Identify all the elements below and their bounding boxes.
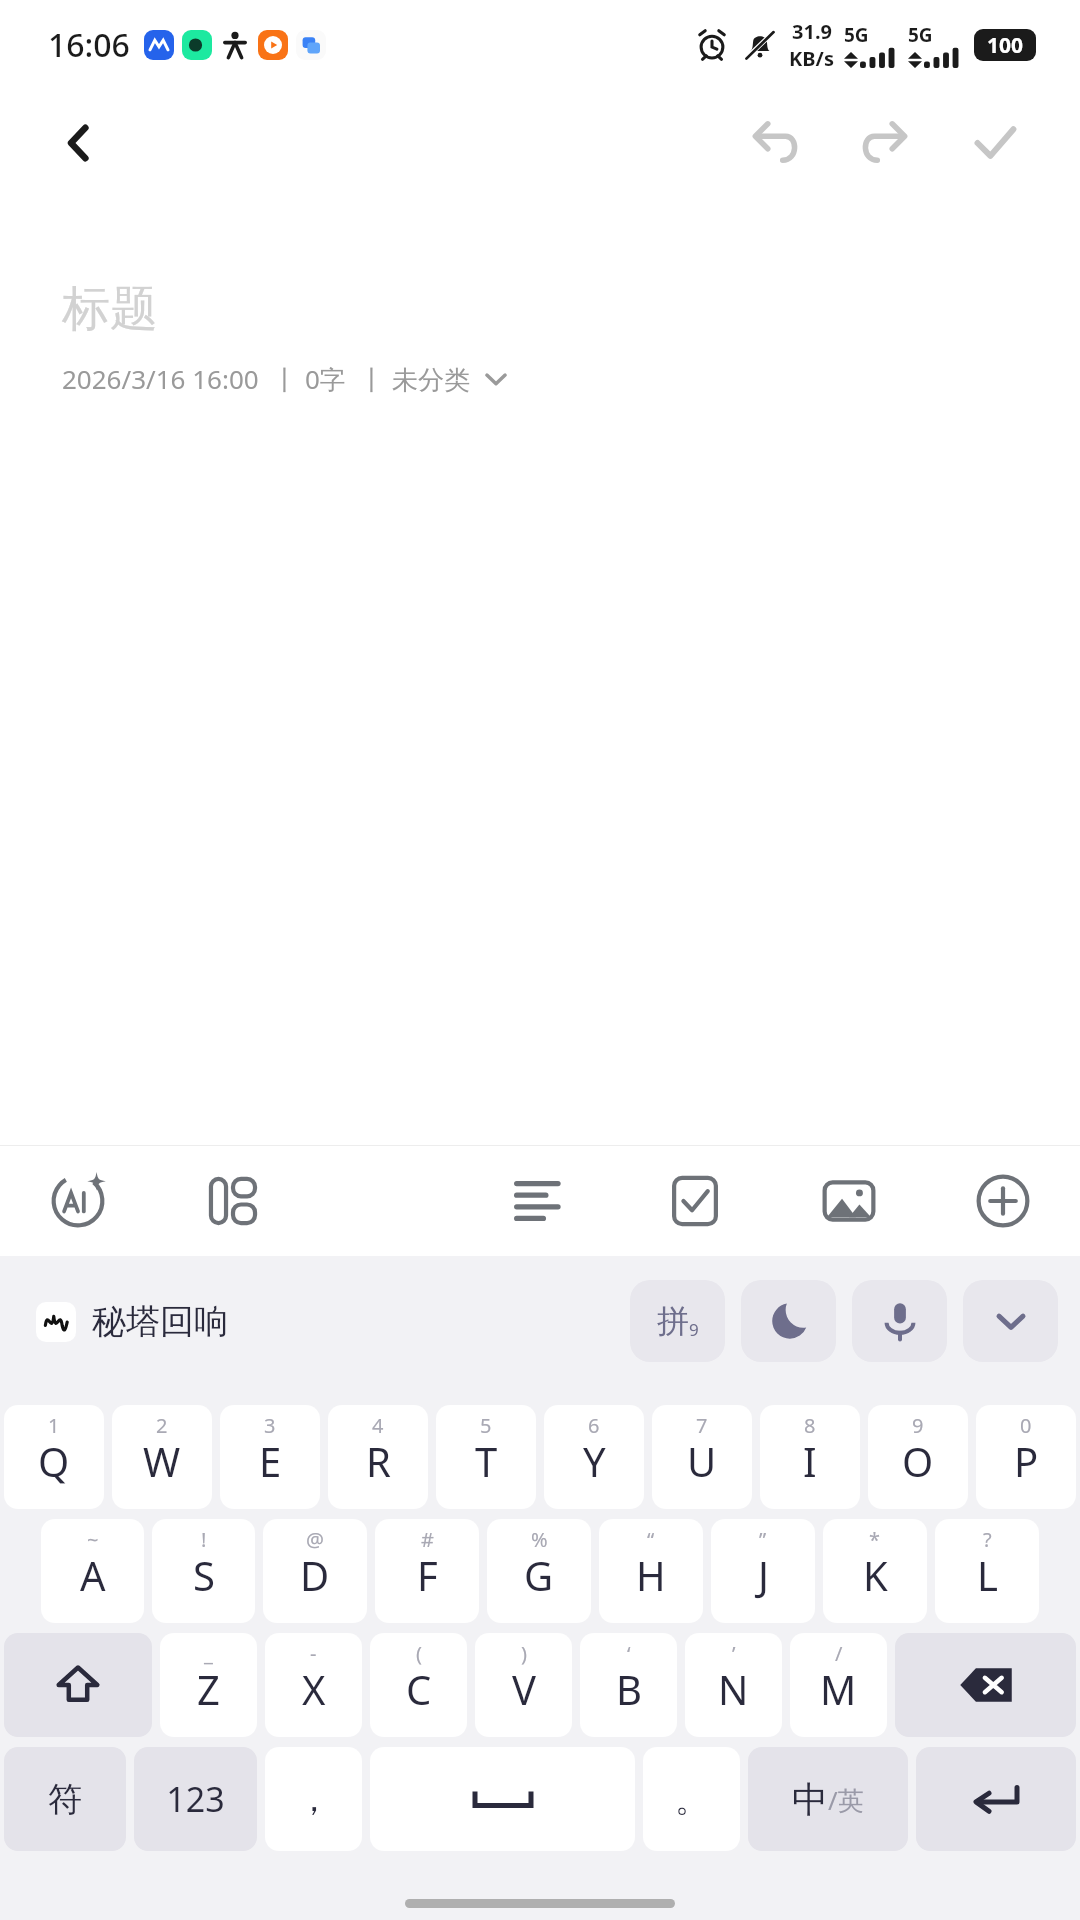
button[interactable]: layout bbox=[155, 1146, 310, 1256]
button[interactable]: @ bbox=[263, 1519, 367, 1623]
staticText: 123 bbox=[166, 1776, 225, 1822]
staticText: 8 bbox=[804, 1412, 816, 1439]
staticText: 5G bbox=[908, 22, 933, 48]
button[interactable]: 7 bbox=[652, 1405, 752, 1509]
staticText: Z bbox=[197, 1662, 220, 1716]
button[interactable]: 3 bbox=[220, 1405, 320, 1509]
button[interactable]: 秘塔回响 bbox=[36, 1300, 228, 1343]
button[interactable]: 5 bbox=[436, 1405, 536, 1509]
staticText: B bbox=[616, 1662, 642, 1716]
staticText: ? bbox=[983, 1526, 992, 1553]
button[interactable]: 。 bbox=[643, 1747, 740, 1851]
staticText: * bbox=[869, 1526, 881, 1553]
button[interactable]: 0 bbox=[976, 1405, 1076, 1509]
staticText: J bbox=[758, 1548, 769, 1602]
staticText: G bbox=[524, 1548, 554, 1602]
staticText: 5 bbox=[480, 1412, 492, 1439]
button[interactable]: 2 bbox=[112, 1405, 212, 1509]
button[interactable]: pin bbox=[630, 1280, 725, 1362]
staticText: 100 bbox=[987, 31, 1024, 60]
button[interactable]: check bbox=[618, 1146, 772, 1256]
button[interactable]: plus bbox=[926, 1146, 1080, 1256]
button[interactable]: Done bbox=[952, 100, 1038, 186]
staticText: _ bbox=[204, 1640, 213, 1667]
button[interactable]: 4 bbox=[328, 1405, 428, 1509]
button[interactable]: 9 bbox=[868, 1405, 968, 1509]
staticText: 拼 bbox=[657, 1301, 689, 1341]
staticText: F bbox=[417, 1548, 438, 1602]
staticText: D bbox=[300, 1548, 330, 1602]
staticText: 5G bbox=[844, 22, 869, 48]
button[interactable]: moon bbox=[741, 1280, 836, 1362]
staticText: 16:06 bbox=[48, 23, 130, 67]
button[interactable]: ， bbox=[265, 1747, 362, 1851]
button[interactable]: 符 bbox=[4, 1747, 126, 1851]
button[interactable]: 6 bbox=[544, 1405, 644, 1509]
button[interactable]: - bbox=[265, 1633, 362, 1737]
staticText: ‘ bbox=[627, 1640, 631, 1667]
button[interactable]: Back bbox=[40, 104, 118, 182]
button[interactable]: Undo bbox=[732, 100, 818, 186]
staticText: Y bbox=[583, 1434, 606, 1488]
button[interactable]: Enter bbox=[916, 1747, 1076, 1851]
staticText: I bbox=[803, 1434, 817, 1488]
button[interactable]: ( bbox=[370, 1633, 467, 1737]
staticText: E bbox=[259, 1434, 282, 1488]
button[interactable]: ’ bbox=[685, 1633, 782, 1737]
button[interactable]: ! bbox=[152, 1519, 255, 1623]
staticText: H bbox=[636, 1548, 666, 1602]
button[interactable]: Space bbox=[370, 1747, 635, 1851]
button[interactable]: align bbox=[464, 1146, 618, 1256]
staticText: N bbox=[718, 1662, 749, 1716]
staticText: # bbox=[421, 1526, 434, 1553]
staticText: 6 bbox=[588, 1412, 600, 1439]
button[interactable]: 中 bbox=[748, 1747, 908, 1851]
staticText: / bbox=[835, 1640, 843, 1667]
button[interactable]: ‘ bbox=[580, 1633, 677, 1737]
button[interactable]: ) bbox=[475, 1633, 572, 1737]
button[interactable]: ” bbox=[711, 1519, 815, 1623]
button[interactable]: “ bbox=[599, 1519, 703, 1623]
button[interactable]: Shift bbox=[4, 1633, 152, 1737]
button[interactable]: 1 bbox=[4, 1405, 104, 1509]
staticText: @ bbox=[306, 1526, 324, 1553]
staticText: 标题 bbox=[62, 279, 158, 339]
button[interactable]: Backspace bbox=[895, 1633, 1076, 1737]
button[interactable]: 123 bbox=[134, 1747, 257, 1851]
staticText: 7 bbox=[696, 1412, 708, 1439]
button[interactable]: mic bbox=[852, 1280, 947, 1362]
button[interactable]: * bbox=[823, 1519, 927, 1623]
staticText: X bbox=[302, 1662, 326, 1716]
button[interactable]: ~ bbox=[41, 1519, 144, 1623]
button[interactable]: / bbox=[790, 1633, 887, 1737]
staticText: P bbox=[1014, 1434, 1039, 1488]
staticText: 2 bbox=[156, 1412, 168, 1439]
staticText: C bbox=[406, 1662, 432, 1716]
button[interactable]: ai bbox=[0, 1146, 155, 1256]
staticText: /英 bbox=[828, 1782, 864, 1818]
button[interactable]: Redo bbox=[842, 100, 928, 186]
staticText: S bbox=[193, 1548, 215, 1602]
button[interactable]: down bbox=[963, 1280, 1058, 1362]
button[interactable]: 8 bbox=[760, 1405, 860, 1509]
staticText: Q bbox=[38, 1434, 70, 1488]
staticText: 9 bbox=[689, 1318, 699, 1341]
staticText: KB/s bbox=[789, 45, 834, 72]
staticText: ~ bbox=[87, 1526, 99, 1553]
staticText: A bbox=[80, 1548, 106, 1602]
staticText: 31.9 bbox=[792, 18, 832, 45]
staticText: 2026/3/16 16:00 丨 0字 丨 未分类 bbox=[62, 361, 471, 397]
staticText: 1 bbox=[48, 1412, 60, 1439]
button[interactable]: # bbox=[375, 1519, 479, 1623]
staticText: ， bbox=[297, 1778, 331, 1821]
button[interactable]: 2026/3/16 16:00 丨 0字 丨 未分类 bbox=[62, 361, 509, 397]
staticText: ’ bbox=[732, 1640, 736, 1667]
button[interactable]: image bbox=[772, 1146, 926, 1256]
button[interactable]: _ bbox=[160, 1633, 257, 1737]
button[interactable]: % bbox=[487, 1519, 591, 1623]
staticText: 符 bbox=[48, 1778, 82, 1821]
button[interactable]: ? bbox=[935, 1519, 1039, 1623]
staticText: K bbox=[863, 1548, 888, 1602]
staticText: ” bbox=[759, 1526, 767, 1553]
